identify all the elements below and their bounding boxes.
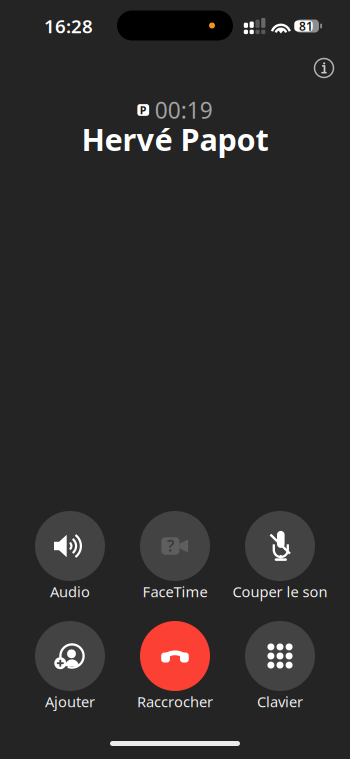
staticText: Ajouter bbox=[45, 692, 95, 711]
staticText: 16:28 bbox=[44, 14, 93, 38]
staticText: Audio bbox=[50, 582, 90, 601]
staticText: Couper le son bbox=[232, 582, 327, 601]
button[interactable]: Raccrocher bbox=[122, 621, 227, 709]
staticText: P bbox=[140, 103, 147, 117]
button[interactable]: ? bbox=[122, 511, 227, 599]
staticText: Hervé Papot bbox=[81, 119, 268, 159]
staticText: ? bbox=[167, 535, 174, 556]
staticText: Clavier bbox=[257, 692, 303, 711]
staticText: Raccrocher bbox=[137, 692, 213, 711]
button[interactable]: Informations bbox=[309, 53, 339, 83]
staticText: 00:19 bbox=[155, 95, 213, 125]
staticText: 81 bbox=[299, 18, 313, 34]
button[interactable]: Couper le son bbox=[227, 511, 332, 599]
button[interactable]: Ajouter bbox=[17, 621, 122, 709]
staticText: FaceTime bbox=[142, 582, 207, 601]
button[interactable]: Audio bbox=[17, 511, 122, 599]
button[interactable]: Clavier bbox=[227, 621, 332, 709]
